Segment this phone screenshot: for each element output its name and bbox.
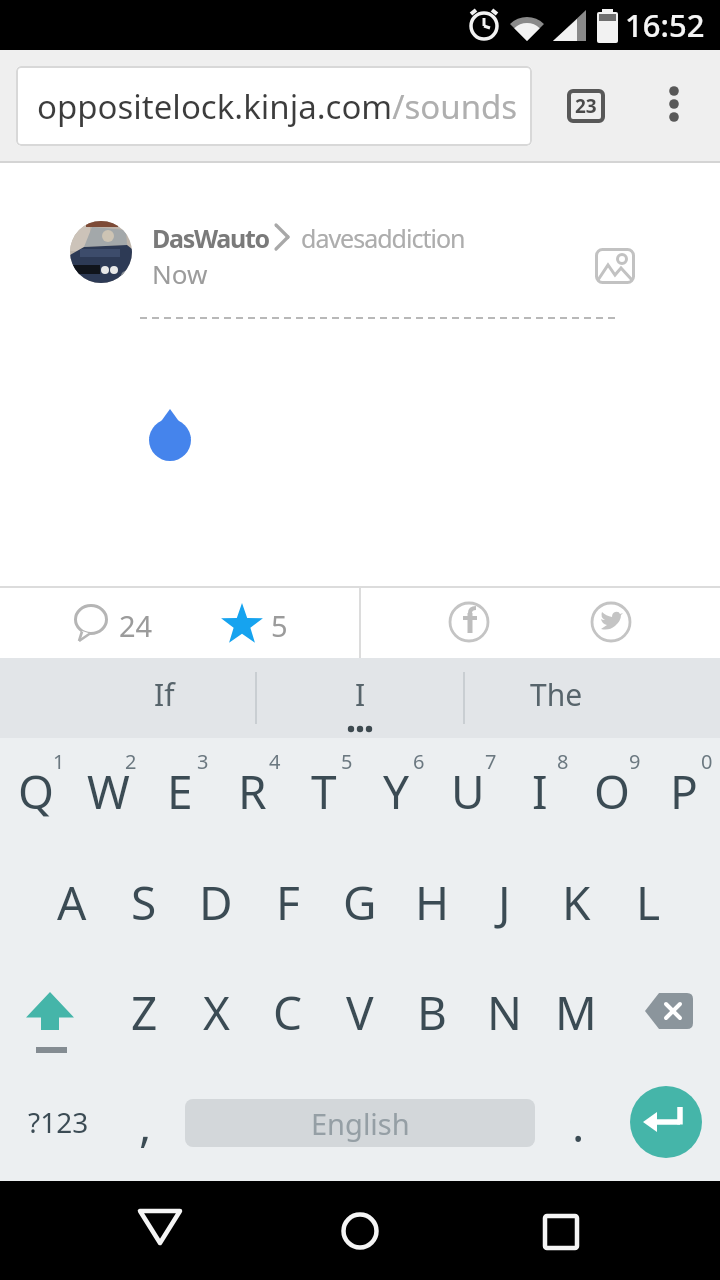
button[interactable]: [630, 1086, 702, 1158]
button[interactable]: D: [180, 847, 252, 957]
button[interactable]: 24: [40, 588, 180, 658]
staticText: 5: [341, 748, 353, 775]
staticText: Q: [18, 760, 54, 823]
button[interactable]: O: [576, 736, 648, 846]
button[interactable]: oppositelock.kinja.com/sounds: [16, 66, 532, 146]
staticText: I: [355, 674, 366, 715]
button[interactable]: The: [464, 658, 720, 738]
button[interactable]: [511, 1181, 611, 1280]
button[interactable]: Z: [108, 957, 180, 1067]
staticText: U: [451, 760, 485, 823]
button[interactable]: [656, 76, 692, 136]
button[interactable]: X: [180, 957, 252, 1067]
staticText: W: [87, 760, 130, 823]
button[interactable]: [70, 221, 132, 283]
staticText: 24: [119, 606, 153, 645]
button[interactable]: W: [72, 736, 144, 846]
button[interactable]: [8, 957, 100, 1067]
staticText: If: [154, 674, 175, 715]
staticText: ,: [139, 1093, 152, 1156]
staticText: 23: [575, 93, 597, 119]
staticText: 3: [197, 748, 209, 775]
button[interactable]: English: [185, 1099, 535, 1147]
staticText: P: [670, 760, 698, 823]
staticText: 2: [125, 748, 137, 775]
button[interactable]: F: [252, 847, 324, 957]
button[interactable]: [429, 588, 509, 658]
button[interactable]: M: [540, 957, 612, 1067]
staticText: T: [311, 760, 337, 823]
button[interactable]: S: [108, 847, 180, 957]
staticText: DasWauto: [152, 221, 269, 255]
staticText: C: [273, 981, 303, 1044]
button[interactable]: T: [288, 736, 360, 846]
button[interactable]: A: [36, 847, 108, 957]
button[interactable]: J: [468, 847, 540, 957]
staticText: S: [131, 871, 157, 934]
staticText: 1: [53, 748, 65, 775]
button[interactable]: Y: [360, 736, 432, 846]
staticText: A: [57, 871, 87, 934]
staticText: J: [498, 871, 511, 934]
staticText: V: [346, 981, 374, 1044]
button[interactable]: If: [0, 658, 256, 738]
staticText: oppositelock.kinja.com/sounds: [37, 84, 518, 129]
button[interactable]: N: [468, 957, 540, 1067]
staticText: M: [555, 981, 597, 1044]
button[interactable]: 5: [200, 588, 330, 658]
button[interactable]: [620, 957, 712, 1067]
staticText: 16:52: [625, 4, 705, 46]
staticText: R: [238, 760, 267, 823]
button[interactable]: R: [216, 736, 288, 846]
button[interactable]: [571, 588, 651, 658]
staticText: Y: [383, 760, 410, 823]
staticText: Now: [152, 256, 208, 291]
staticText: O: [594, 760, 630, 823]
button[interactable]: I: [256, 658, 464, 738]
staticText: davesaddiction: [301, 221, 465, 255]
button[interactable]: ?123: [8, 1067, 108, 1177]
button[interactable]: 23: [567, 89, 605, 123]
button[interactable]: B: [396, 957, 468, 1067]
button[interactable]: E: [144, 736, 216, 846]
staticText: English: [311, 1104, 410, 1143]
staticText: ?123: [28, 1103, 89, 1141]
staticText: 7: [485, 748, 497, 775]
staticText: E: [167, 760, 193, 823]
button[interactable]: [110, 1181, 210, 1280]
button[interactable]: V: [324, 957, 396, 1067]
staticText: 6: [413, 748, 425, 775]
button[interactable]: I: [504, 736, 576, 846]
staticText: 0: [701, 748, 713, 775]
staticText: 5: [271, 606, 288, 645]
staticText: X: [203, 981, 230, 1044]
button[interactable]: P: [648, 736, 720, 846]
staticText: I: [532, 760, 548, 823]
staticText: The: [530, 674, 583, 715]
button[interactable]: H: [396, 847, 468, 957]
staticText: K: [562, 871, 591, 934]
staticText: G: [343, 871, 377, 934]
staticText: N: [487, 981, 522, 1044]
button[interactable]: Q: [0, 736, 72, 846]
staticText: D: [199, 871, 233, 934]
staticText: 9: [629, 748, 641, 775]
staticText: 8: [557, 748, 569, 775]
button[interactable]: L: [612, 847, 684, 957]
staticText: .: [572, 1093, 585, 1156]
staticText: 4: [269, 748, 281, 775]
button[interactable]: C: [252, 957, 324, 1067]
button[interactable]: U: [432, 736, 504, 846]
staticText: Z: [131, 981, 158, 1044]
button[interactable]: G: [324, 847, 396, 957]
button[interactable]: K: [540, 847, 612, 957]
staticText: F: [276, 871, 300, 934]
button[interactable]: .: [545, 1067, 611, 1177]
staticText: L: [636, 871, 661, 934]
button[interactable]: ,: [110, 1067, 180, 1177]
staticText: B: [417, 981, 447, 1044]
button[interactable]: [310, 1181, 410, 1280]
staticText: H: [415, 871, 450, 934]
